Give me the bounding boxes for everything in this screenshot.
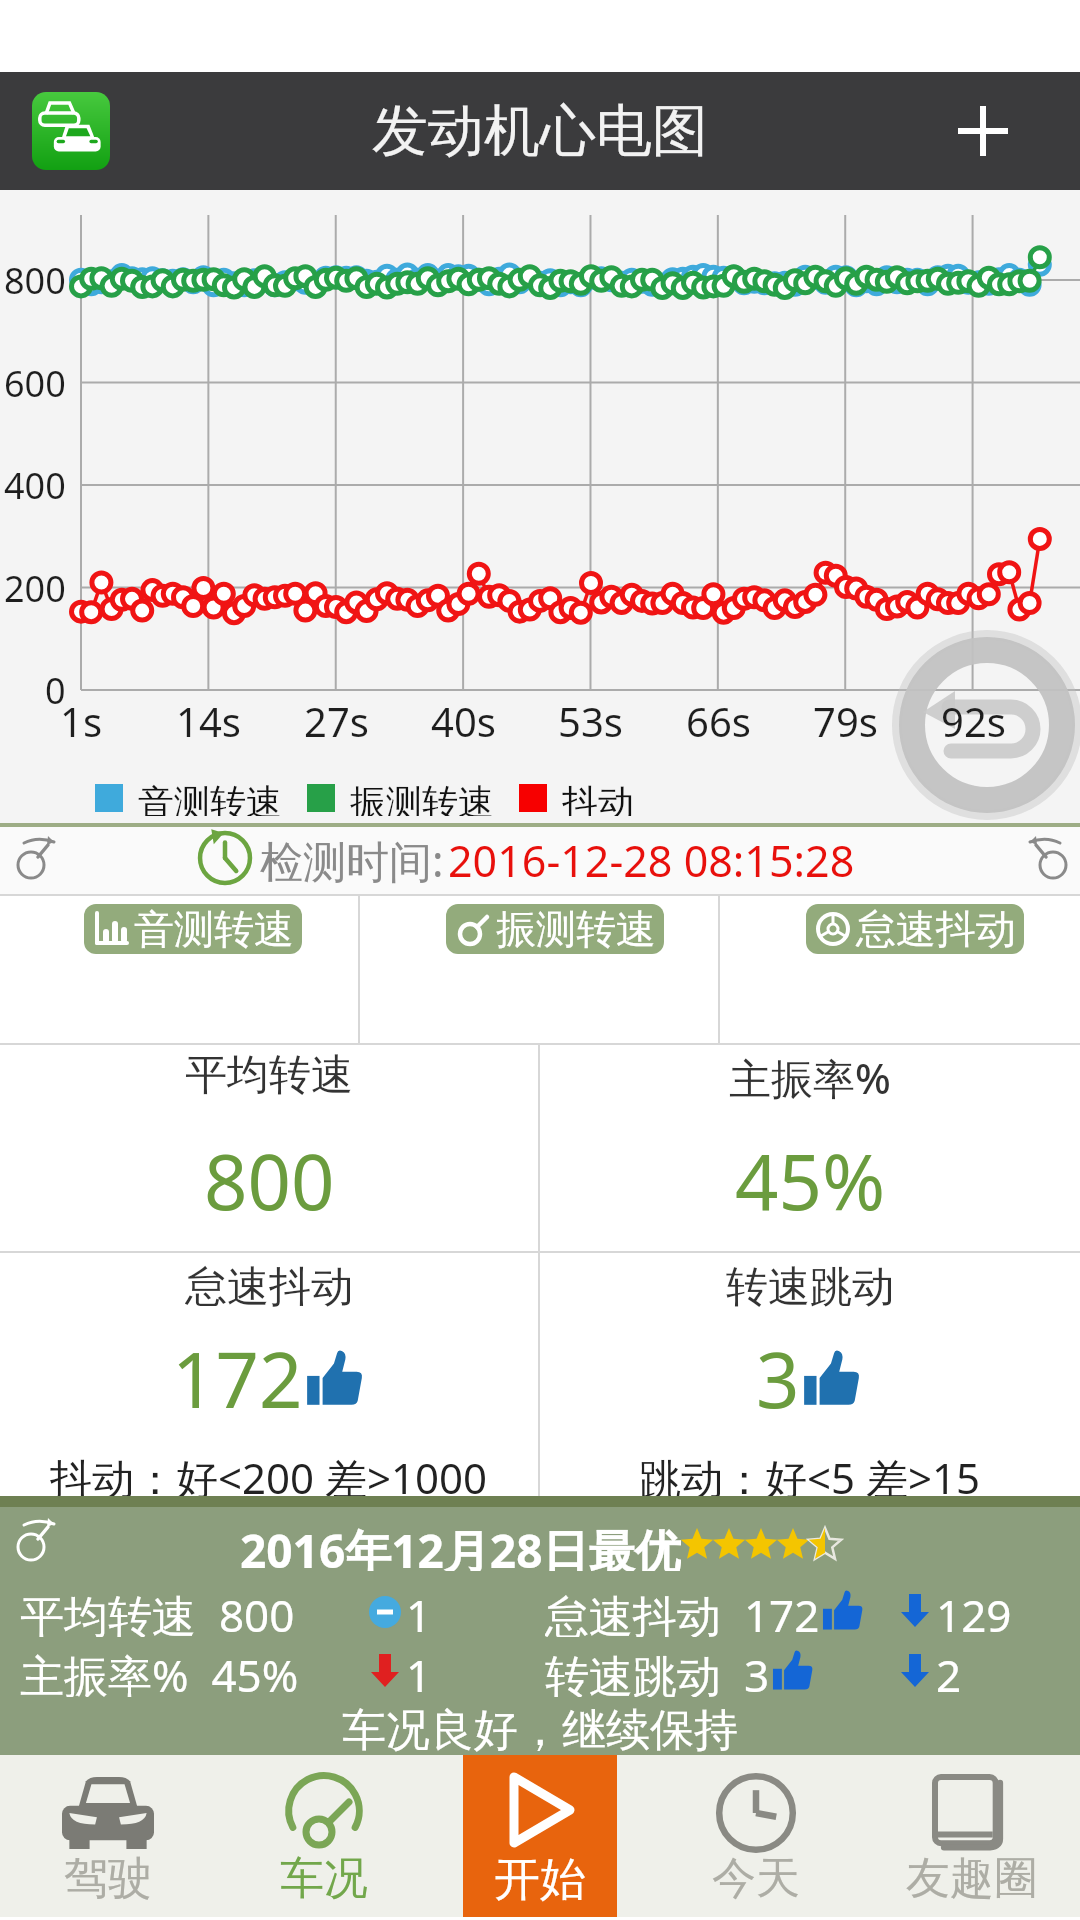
staticText: 主振率% 45%: [20, 1645, 299, 1697]
staticText: 40s: [431, 694, 496, 748]
button[interactable]: [895, 633, 1079, 817]
staticText: 怠速抖动: [856, 904, 1016, 954]
staticText: 1: [406, 1585, 432, 1637]
staticText: 驾驶: [64, 1851, 152, 1906]
staticText: 车况: [280, 1851, 368, 1906]
staticText: 振测转速: [350, 780, 494, 816]
staticText: 2016-12-28 08:15:28: [448, 831, 855, 890]
staticText: 2016年12月28日最优: [240, 1519, 681, 1571]
staticText: 开始: [494, 1851, 586, 1909]
button[interactable]: 振测转速: [454, 904, 656, 954]
staticText: 800: [4, 256, 66, 305]
staticText: 今天: [712, 1851, 800, 1906]
staticText: 怠速抖动: [185, 1261, 353, 1311]
button[interactable]: 友趣圈: [864, 1755, 1080, 1917]
staticText: 3: [756, 1327, 800, 1431]
staticText: 1s: [60, 694, 103, 748]
staticText: 振测转速: [496, 904, 656, 954]
staticText: 53s: [558, 694, 623, 748]
staticText: 200: [4, 564, 66, 613]
button[interactable]: 车况: [216, 1755, 432, 1917]
staticText: 27s: [304, 694, 369, 748]
staticText: 1: [406, 1645, 432, 1697]
staticText: 友趣圈: [906, 1851, 1038, 1906]
staticText: 2: [936, 1645, 962, 1697]
staticText: 发动机心电图: [372, 96, 708, 167]
staticText: 转速跳动 3: [545, 1645, 770, 1697]
staticText: 66s: [686, 694, 751, 748]
button[interactable]: [948, 96, 1018, 166]
staticText: 车况良好，继续保持: [342, 1703, 738, 1755]
staticText: 129: [936, 1585, 1012, 1637]
staticText: 79s: [813, 694, 878, 748]
staticText: 45%: [735, 1129, 886, 1233]
staticText: 平均转速 800: [20, 1585, 295, 1637]
button[interactable]: 怠速抖动: [814, 904, 1016, 954]
staticText: 音测转速: [138, 780, 282, 816]
button[interactable]: 开始: [463, 1755, 617, 1917]
button[interactable]: 音测转速: [92, 904, 294, 954]
staticText: 0: [45, 666, 66, 715]
staticText: 800: [204, 1129, 335, 1233]
staticText: 14s: [176, 694, 241, 748]
button[interactable]: 驾驶: [0, 1755, 216, 1917]
staticText: 跳动：好<5 差>15: [639, 1449, 981, 1499]
staticText: 检测时间:: [260, 831, 444, 890]
staticText: 音测转速: [134, 904, 294, 954]
staticText: 抖动: [562, 780, 634, 816]
staticText: 400: [4, 461, 66, 510]
button[interactable]: 今天: [648, 1755, 864, 1917]
staticText: 600: [4, 359, 66, 408]
staticText: 主振率%: [729, 1049, 891, 1101]
staticText: 92s: [941, 694, 1006, 748]
staticText: 转速跳动: [726, 1261, 894, 1311]
staticText: 平均转速: [185, 1049, 353, 1101]
staticText: 怠速抖动 172: [545, 1585, 820, 1637]
staticText: 抖动：好<200 差>1000: [50, 1449, 488, 1499]
staticText: 172: [172, 1327, 303, 1431]
